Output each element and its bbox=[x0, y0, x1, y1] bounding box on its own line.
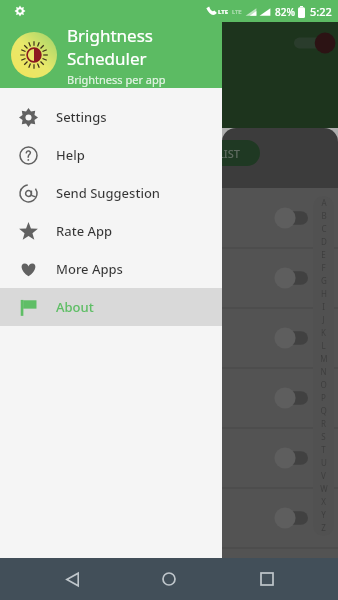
staticText: N bbox=[320, 366, 327, 377]
staticText: K bbox=[321, 327, 326, 338]
staticText: LTE bbox=[218, 8, 229, 16]
staticText: T bbox=[321, 444, 326, 455]
staticText: LIST bbox=[222, 146, 240, 161]
button[interactable] bbox=[222, 248, 338, 308]
staticText: Help bbox=[56, 146, 85, 164]
staticText: C bbox=[321, 223, 327, 234]
staticText: D bbox=[321, 236, 327, 247]
button[interactable]: LIST bbox=[222, 140, 260, 166]
staticText: O bbox=[320, 379, 327, 390]
staticText: More Apps bbox=[56, 260, 123, 278]
button[interactable]: Alphabet index bbox=[313, 196, 334, 536]
button[interactable]: Settings bbox=[0, 98, 222, 136]
button[interactable]: Home bbox=[143, 558, 195, 600]
button[interactable]: Master toggle bbox=[292, 30, 336, 56]
button[interactable] bbox=[222, 488, 338, 548]
button[interactable] bbox=[222, 548, 338, 600]
button[interactable]: Recents bbox=[241, 558, 293, 600]
staticText: About bbox=[56, 298, 94, 316]
button[interactable]: Send Suggestion bbox=[0, 174, 222, 212]
button[interactable]: More Apps bbox=[0, 250, 222, 288]
staticText: L bbox=[321, 340, 326, 351]
staticText: X bbox=[321, 496, 326, 507]
staticText: R bbox=[321, 418, 326, 429]
staticText: 82% bbox=[275, 5, 295, 19]
staticText: H bbox=[321, 288, 327, 299]
staticText: E bbox=[321, 249, 326, 260]
button[interactable]: About bbox=[0, 288, 222, 326]
staticText: S bbox=[321, 431, 326, 442]
staticText: Send Suggestion bbox=[56, 184, 160, 202]
button[interactable]: Back bbox=[46, 558, 98, 600]
staticText: B bbox=[321, 210, 327, 221]
staticText: Q bbox=[320, 405, 327, 416]
button[interactable] bbox=[222, 188, 338, 248]
staticText: Z bbox=[321, 522, 326, 533]
button[interactable] bbox=[222, 428, 338, 488]
staticText: V bbox=[321, 470, 326, 481]
staticText: Brightness per app bbox=[67, 72, 166, 87]
staticText: P bbox=[321, 392, 326, 403]
button[interactable] bbox=[222, 368, 338, 428]
staticText: Rate App bbox=[56, 222, 113, 240]
staticText: Brightness Scheduler bbox=[67, 24, 222, 70]
button[interactable]: Rate App bbox=[0, 212, 222, 250]
staticText: W bbox=[320, 483, 328, 494]
staticText: G bbox=[321, 275, 327, 286]
staticText: M bbox=[320, 353, 328, 364]
staticText: Y bbox=[321, 509, 326, 520]
staticText: Settings bbox=[56, 108, 107, 126]
staticText: 5:22 bbox=[310, 4, 332, 19]
staticText: F bbox=[321, 262, 326, 273]
staticText: J bbox=[322, 314, 325, 325]
staticText: A bbox=[321, 197, 327, 208]
button[interactable]: Brightness Scheduler bbox=[0, 22, 222, 88]
staticText: I bbox=[322, 301, 325, 312]
staticText: U bbox=[321, 457, 327, 468]
button[interactable]: Help bbox=[0, 136, 222, 174]
staticText: LTE bbox=[232, 8, 242, 16]
button[interactable] bbox=[222, 308, 338, 368]
